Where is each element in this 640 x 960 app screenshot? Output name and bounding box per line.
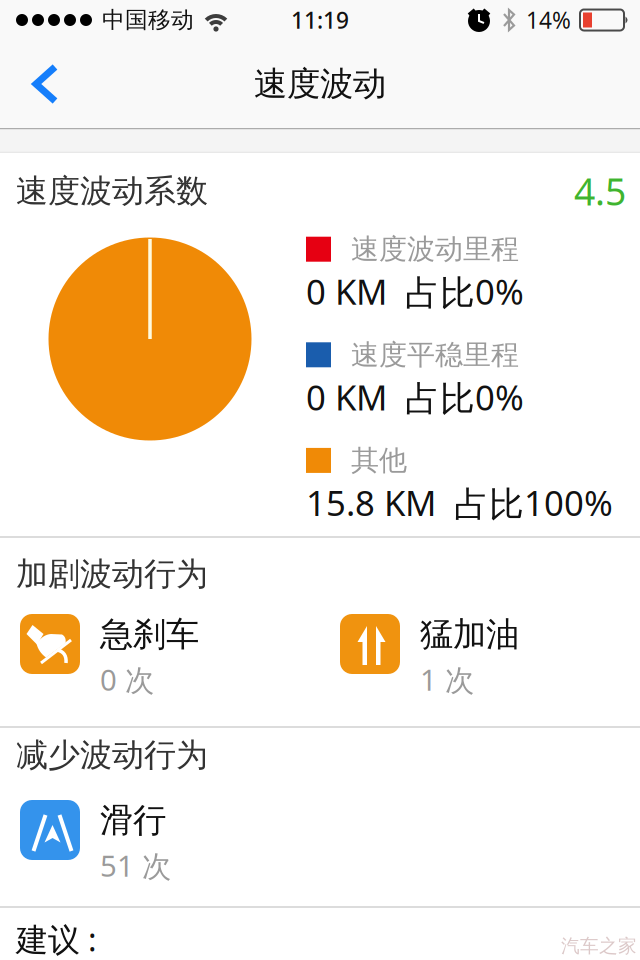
staticText: 其他 xyxy=(351,443,407,478)
staticText: 14% xyxy=(526,5,571,35)
staticText: 速度平稳里程 xyxy=(351,338,519,372)
staticText: 4.5 xyxy=(574,166,626,216)
staticText: 0 次 xyxy=(100,660,154,699)
staticText: 速度波动里程 xyxy=(351,232,519,266)
staticText: 加剧波动行为 xyxy=(16,554,208,594)
staticText: 急刹车 xyxy=(100,614,199,655)
staticText: 速度波动 xyxy=(254,63,386,104)
staticText: 滑行 xyxy=(100,800,166,841)
staticText: 11:19 xyxy=(291,5,349,35)
staticText: 减少波动行为 xyxy=(16,735,208,775)
staticText: 中国移动 xyxy=(102,6,194,34)
staticText: 51 次 xyxy=(100,846,171,885)
staticText: 速度波动系数 xyxy=(16,171,208,211)
staticText: 1 次 xyxy=(420,660,474,699)
staticText: 猛加油 xyxy=(420,614,519,655)
staticText: 建议 : xyxy=(16,918,97,960)
staticText: 0 KM 占比0% xyxy=(306,268,524,315)
staticText: 汽车之家 xyxy=(561,934,637,957)
button[interactable]: 返回 xyxy=(0,57,60,111)
staticText: 15.8 KM 占比100% xyxy=(306,480,613,526)
staticText: 0 KM 占比0% xyxy=(306,374,524,420)
